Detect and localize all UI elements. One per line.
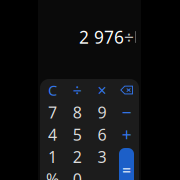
button[interactable]: % bbox=[40, 168, 65, 180]
staticText: 7 bbox=[48, 102, 57, 123]
button[interactable]: Delete bbox=[114, 79, 139, 101]
staticText: + bbox=[122, 123, 132, 146]
staticText: ÷ bbox=[73, 79, 82, 101]
button[interactable]: 9 bbox=[89, 101, 114, 123]
staticText: C bbox=[48, 80, 57, 100]
button[interactable]: = bbox=[119, 148, 134, 180]
staticText: = bbox=[122, 159, 131, 180]
staticText: 4 bbox=[48, 124, 57, 145]
staticText: 0 bbox=[73, 168, 82, 180]
button[interactable]: − bbox=[114, 101, 139, 123]
button[interactable]: 8 bbox=[65, 101, 90, 123]
staticText: ÷ bbox=[124, 25, 134, 48]
staticText: 5 bbox=[73, 124, 82, 145]
button[interactable]: C bbox=[40, 79, 65, 101]
button[interactable]: × bbox=[89, 79, 114, 101]
button[interactable]: 0 bbox=[65, 168, 90, 180]
button[interactable]: ÷ bbox=[65, 79, 90, 101]
staticText: 9 bbox=[97, 102, 106, 123]
button[interactable]: 4 bbox=[40, 123, 65, 146]
button[interactable]: 5 bbox=[65, 123, 90, 146]
staticText: 1 bbox=[48, 146, 57, 167]
staticText: 8 bbox=[73, 102, 82, 123]
button[interactable]: + bbox=[114, 123, 139, 146]
staticText: 2 bbox=[73, 146, 82, 167]
staticText: 3 bbox=[97, 146, 106, 167]
staticText: − bbox=[122, 101, 132, 124]
staticText: 2 976 bbox=[79, 25, 124, 48]
staticText: × bbox=[97, 79, 106, 101]
button[interactable]: 3 bbox=[89, 146, 114, 168]
staticText: % bbox=[46, 168, 59, 180]
button[interactable]: 1 bbox=[40, 146, 65, 168]
button[interactable]: 6 bbox=[89, 123, 114, 146]
staticText: 6 bbox=[97, 124, 106, 145]
button[interactable]: 2 bbox=[65, 146, 90, 168]
button[interactable]: 7 bbox=[40, 101, 65, 123]
